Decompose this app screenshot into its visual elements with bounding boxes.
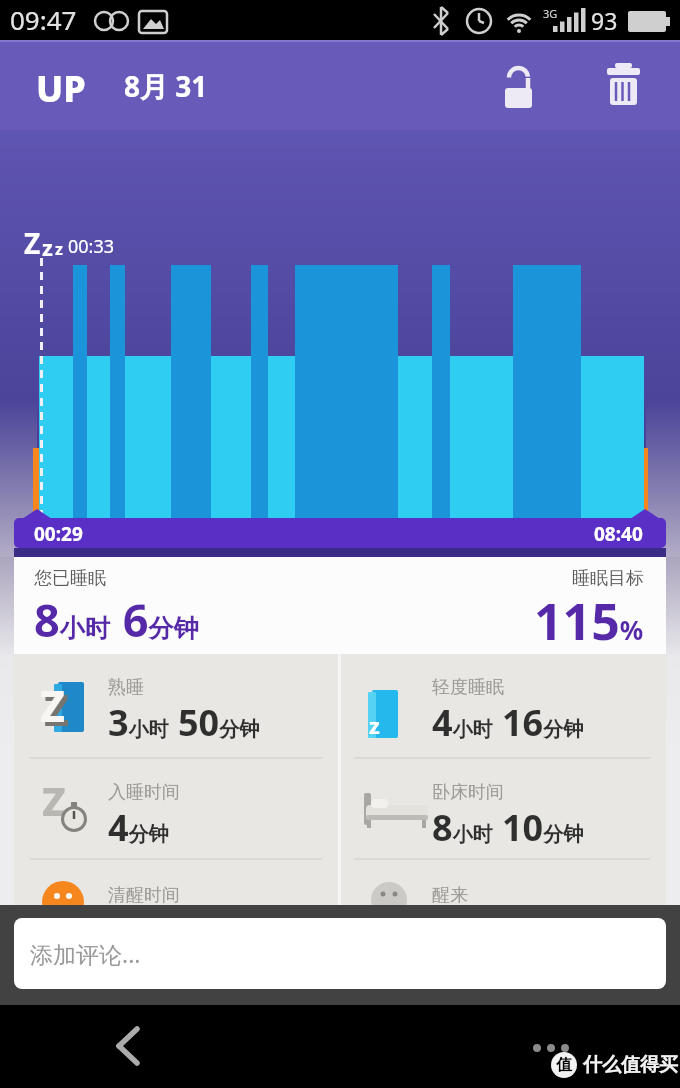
staticText: UP bbox=[36, 64, 86, 113]
button[interactable]: 添加评论... bbox=[14, 918, 666, 989]
staticText: 115% bbox=[534, 587, 644, 655]
staticText: 8月 31 bbox=[124, 67, 208, 105]
staticText: z bbox=[55, 238, 63, 260]
button[interactable] bbox=[105, 1020, 155, 1076]
staticText: 00:29 bbox=[34, 521, 83, 547]
staticText: 睡眠目标 bbox=[572, 567, 644, 590]
button[interactable]: Z bbox=[14, 654, 338, 757]
button[interactable] bbox=[495, 58, 541, 114]
button[interactable] bbox=[338, 858, 666, 907]
button[interactable]: Z bbox=[14, 757, 338, 858]
staticText: 08:40 bbox=[594, 521, 643, 547]
staticText: 3小时 50分钟 bbox=[108, 698, 260, 747]
staticText: Z bbox=[42, 773, 66, 827]
staticText: 入睡时间 bbox=[108, 781, 180, 804]
button[interactable] bbox=[338, 757, 666, 858]
staticText: 3G bbox=[543, 6, 558, 21]
staticText: z bbox=[42, 232, 53, 262]
staticText: Z bbox=[44, 681, 69, 738]
staticText: Z bbox=[40, 677, 65, 734]
staticText: 醒来 bbox=[432, 884, 468, 907]
button[interactable] bbox=[522, 1035, 580, 1065]
button[interactable] bbox=[14, 858, 338, 907]
staticText: z bbox=[369, 710, 380, 740]
button[interactable]: z bbox=[338, 654, 666, 757]
staticText: 熟睡 bbox=[108, 676, 144, 699]
button[interactable] bbox=[600, 58, 646, 114]
staticText: 轻度睡眠 bbox=[432, 676, 504, 699]
staticText: 8小时 10分钟 bbox=[432, 803, 584, 852]
staticText: 93 bbox=[591, 5, 618, 36]
staticText: 您已睡眠 bbox=[34, 567, 106, 590]
staticText: 卧床时间 bbox=[432, 781, 504, 804]
staticText: 4小时 16分钟 bbox=[432, 698, 584, 747]
staticText: 09:47 bbox=[10, 2, 77, 37]
staticText: 添加评论... bbox=[30, 938, 141, 969]
staticText: 8小时 6分钟 bbox=[34, 589, 199, 650]
staticText: 什么值得买 bbox=[583, 1053, 678, 1077]
staticText: Z bbox=[24, 224, 41, 262]
staticText: 清醒时间 bbox=[108, 884, 180, 907]
staticText: 4分钟 bbox=[108, 803, 169, 852]
staticText: 值 bbox=[556, 1055, 572, 1075]
staticText: 00:33 bbox=[68, 234, 115, 259]
